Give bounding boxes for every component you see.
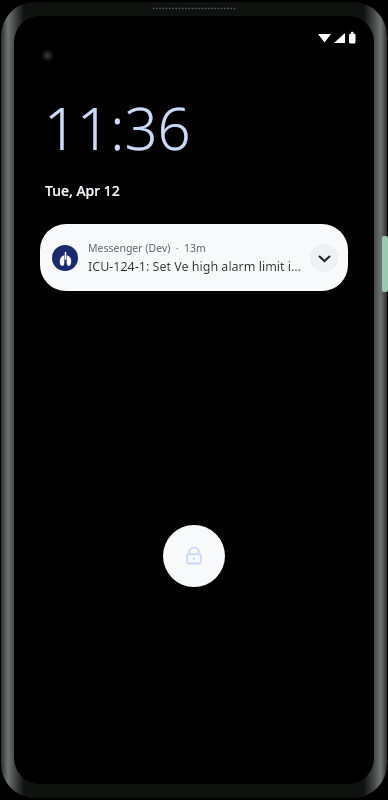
staticText: ICU-124-1: Set Ve high alarm limit is no… — [88, 258, 304, 275]
staticText: Tue, Apr 12 — [45, 181, 120, 200]
other: Power button — [382, 236, 388, 292]
button[interactable]: Unlock — [163, 525, 225, 587]
staticText: Messenger (Dev) · 13m — [88, 241, 206, 255]
button[interactable]: Expand notification — [310, 244, 338, 272]
staticText: 11:36 — [44, 88, 191, 167]
button[interactable]: Messenger (Dev) · 13m — [40, 224, 348, 291]
